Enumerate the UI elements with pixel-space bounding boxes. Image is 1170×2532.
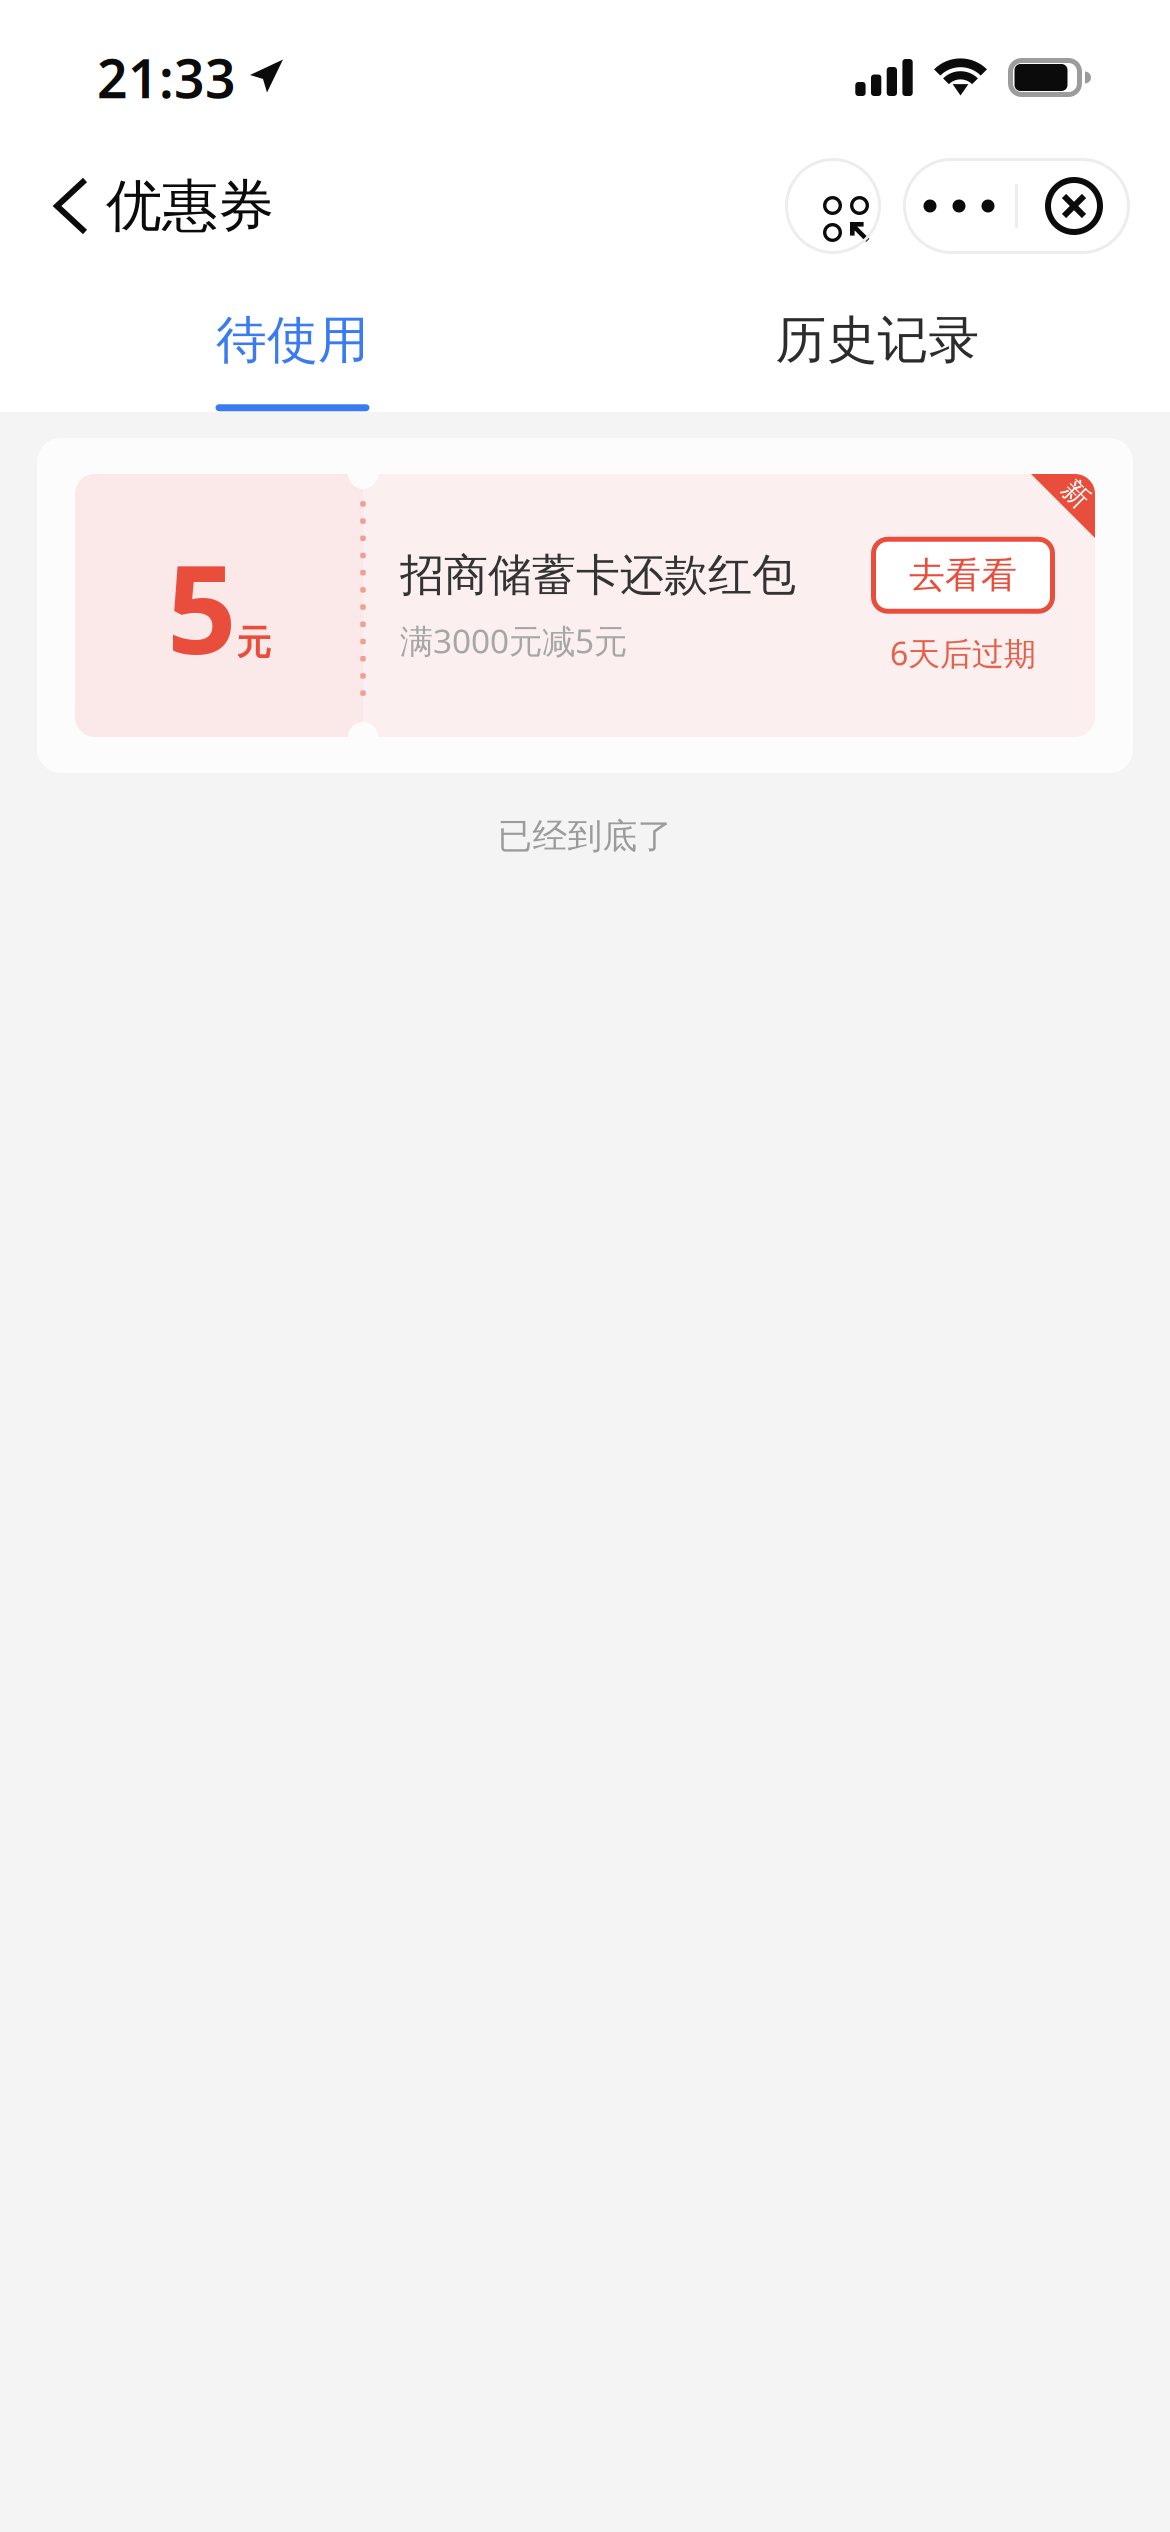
staticText: 新 <box>1062 478 1089 510</box>
staticText: 元 <box>236 621 271 664</box>
button[interactable]: 待使用 <box>0 257 585 412</box>
staticText: 6天后过期 <box>890 632 1036 674</box>
button[interactable]: 历史记录 <box>585 257 1170 412</box>
button[interactable]: 优惠券 <box>48 158 280 254</box>
staticText: 满3000元减5元 <box>400 618 627 663</box>
staticText: 优惠券 <box>106 172 274 240</box>
staticText: 招商储蓄卡还款红包 <box>400 548 796 602</box>
staticText: 历史记录 <box>775 309 979 371</box>
staticText: 已经到底了 <box>497 815 672 858</box>
button[interactable]: More options and Close <box>903 158 1130 254</box>
staticText: 5 <box>166 525 236 688</box>
button[interactable]: 去看看 <box>871 537 1055 614</box>
staticText: 21:33 <box>97 42 236 113</box>
staticText: 待使用 <box>216 309 369 371</box>
staticText: 去看看 <box>909 553 1017 597</box>
button[interactable]: Mini Program Panel <box>785 158 881 254</box>
